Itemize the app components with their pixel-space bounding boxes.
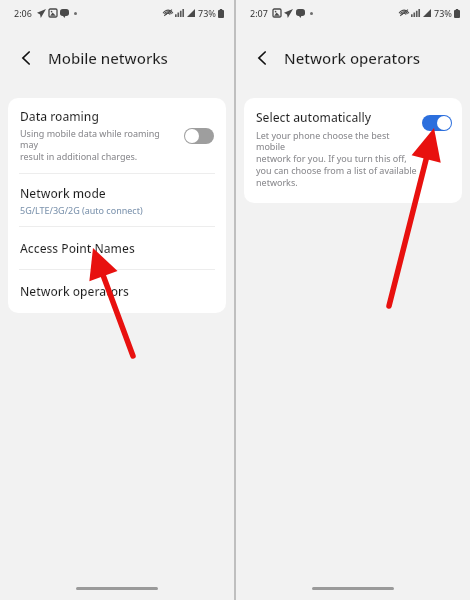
staticText: 73%	[198, 7, 216, 19]
staticText: Mobile networks	[48, 48, 168, 68]
button[interactable]: Network mode	[8, 174, 226, 226]
button[interactable]: Data roaming	[8, 98, 226, 173]
button[interactable]: Select automatically	[244, 98, 462, 203]
button[interactable]: Back	[250, 45, 276, 71]
button[interactable]: Back	[14, 45, 40, 71]
staticText: 2:07	[250, 7, 268, 19]
staticText: Network operators	[20, 283, 129, 299]
staticText: 5G/LTE/3G/2G (auto connect)	[20, 204, 143, 216]
staticText: Access Point Names	[20, 240, 135, 256]
staticText: 2:06	[14, 7, 32, 19]
staticText: 73%	[434, 7, 452, 19]
staticText: Let your phone choose the best mobile ne…	[256, 129, 418, 189]
staticText: Data roaming	[20, 108, 99, 124]
staticText: Select automatically	[256, 109, 372, 125]
staticText: Network mode	[20, 185, 106, 201]
staticText: Using mobile data while roaming may resu…	[20, 127, 178, 163]
staticText: Network operators	[284, 48, 421, 68]
button[interactable]: Network operators	[8, 270, 226, 313]
button[interactable]: Switch off	[184, 128, 214, 144]
button[interactable]: Switch on	[422, 115, 452, 131]
button[interactable]: Access Point Names	[8, 227, 226, 269]
